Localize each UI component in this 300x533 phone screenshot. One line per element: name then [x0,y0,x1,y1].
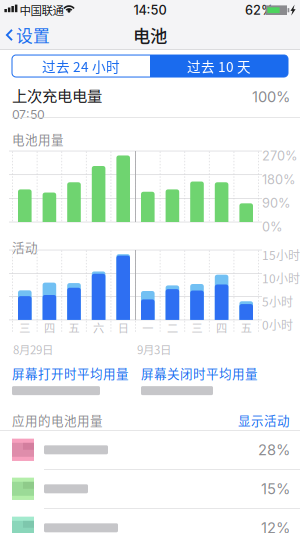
staticText: 三 [19,319,30,336]
staticText: 应用的电池用量 [12,411,103,429]
staticText: 15% [261,480,290,498]
staticText: 三 [191,319,202,336]
staticText: 五 [241,319,252,336]
staticText: 上次充电电量 [12,84,102,106]
button[interactable]: 15% [0,470,300,509]
staticText: 设置 [16,23,50,47]
staticText: 100% [252,88,290,106]
staticText: 90% [262,195,291,211]
button[interactable]: 屏幕打开时平均用量 [12,364,140,395]
staticText: 六 [93,319,104,336]
staticText: 07:50 [12,107,45,122]
button[interactable]: 28% [0,431,300,470]
staticText: 二 [167,319,178,336]
staticText: 显示活动 [238,411,290,429]
staticText: 四 [44,319,55,336]
staticText: 15小时 [262,246,300,263]
button[interactable]: 过去 24 小时 [12,55,150,77]
staticText: 12% [261,519,290,533]
staticText: 电池 [133,22,167,48]
staticText: 14:50 [133,2,166,18]
staticText: 270% [262,148,298,164]
staticText: 活动 [12,238,38,256]
staticText: 五 [68,319,79,336]
staticText: 屏幕打开时平均用量 [12,364,129,382]
button[interactable]: 过去 10 天 [150,55,288,77]
staticText: 一 [142,319,153,336]
button[interactable]: 显示活动 [238,411,290,429]
staticText: 10小时 [262,269,300,287]
staticText: 过去 10 天 [187,56,251,76]
staticText: 0% [262,219,283,235]
staticText: 过去 24 小时 [42,56,120,76]
staticText: 9月3日 [137,341,171,358]
staticText: 62% [245,2,274,18]
staticText: 180% [262,172,296,187]
staticText: 8月29日 [13,341,53,358]
staticText: 5小时 [262,293,293,310]
staticText: 四 [216,319,227,336]
button[interactable]: 设置 [0,20,56,50]
button[interactable]: 屏幕关闭时平均用量 [141,364,269,395]
staticText: 屏幕关闭时平均用量 [141,364,258,382]
staticText: 日 [118,319,129,336]
staticText: 中国联通 [19,2,63,18]
staticText: 28% [258,441,290,459]
staticText: 电池用量 [12,130,64,148]
staticText: 0小时 [262,316,293,333]
button[interactable]: 12% [0,509,300,533]
